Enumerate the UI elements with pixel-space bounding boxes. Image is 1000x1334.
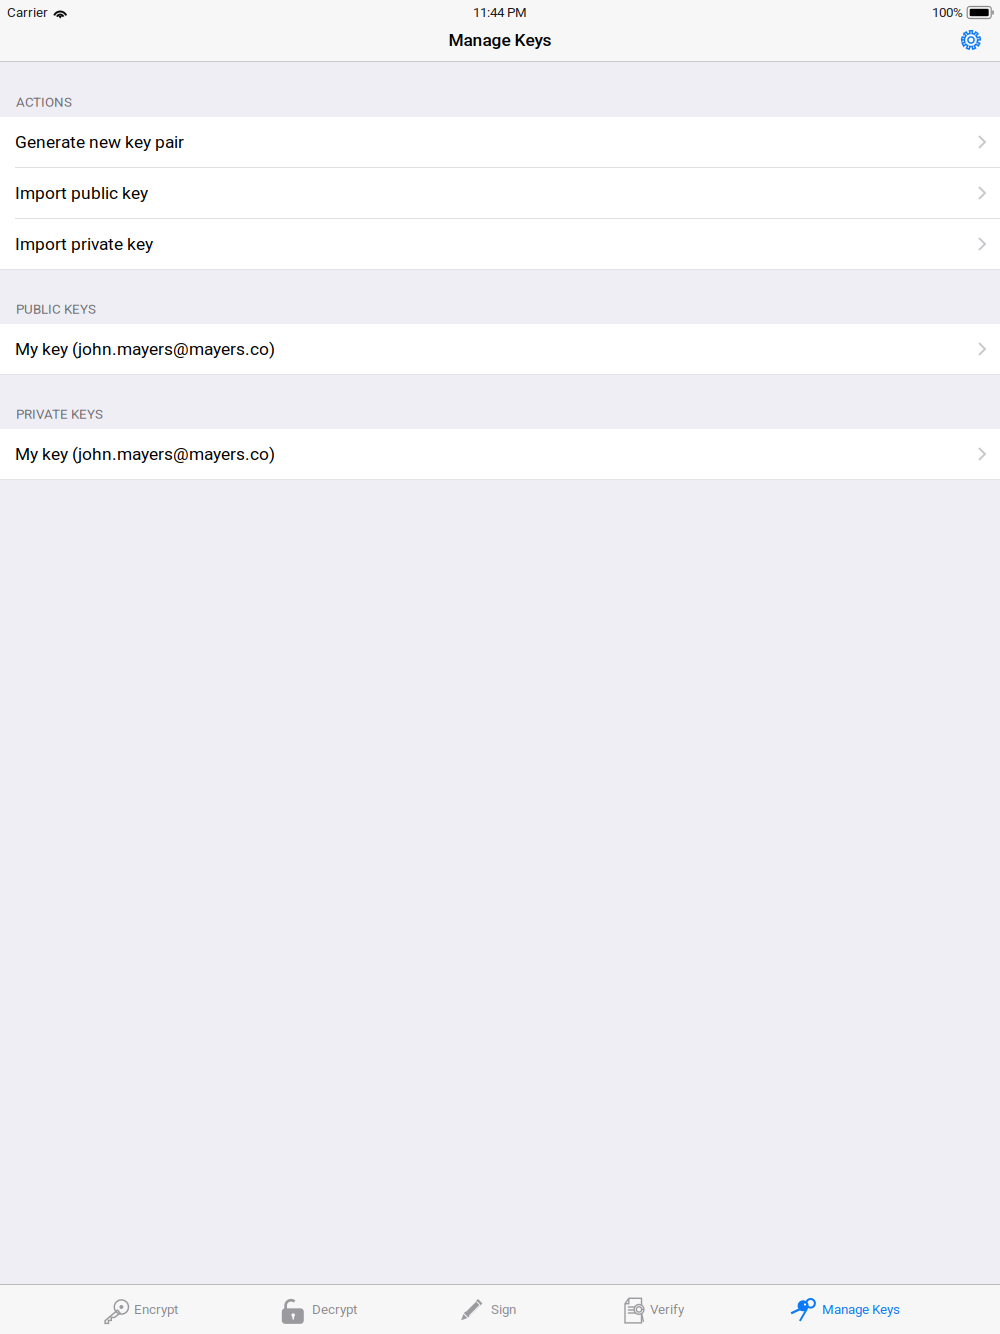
staticText: Verify (650, 1302, 684, 1317)
button[interactable]: Verify (612, 1285, 688, 1334)
button[interactable]: Generate new key pair (0, 117, 1000, 167)
staticText: Encrypt (134, 1302, 178, 1317)
button[interactable]: Sign (453, 1285, 520, 1334)
staticText: Manage Keys (822, 1302, 900, 1317)
staticText: Manage Keys (448, 30, 551, 50)
staticText: Import public key (15, 183, 148, 203)
staticText: Decrypt (312, 1302, 357, 1317)
staticText: ACTIONS (16, 94, 72, 110)
button[interactable]: Manage Keys (780, 1285, 904, 1334)
button[interactable]: My key (john.mayers@mayers.co) (0, 324, 1000, 374)
staticText: PUBLIC KEYS (16, 301, 96, 317)
button[interactable]: Import private key (0, 219, 1000, 269)
staticText: Generate new key pair (15, 132, 184, 152)
staticText: 100% (932, 5, 963, 20)
staticText: 11:44 PM (473, 5, 527, 20)
staticText: My key (john.mayers@mayers.co) (15, 444, 275, 464)
staticText: Carrier (7, 5, 48, 20)
staticText: My key (john.mayers@mayers.co) (15, 339, 275, 359)
button[interactable]: Settings (953, 24, 989, 56)
button[interactable]: Decrypt (274, 1285, 361, 1334)
button[interactable]: Import public key (0, 168, 1000, 218)
staticText: PRIVATE KEYS (16, 406, 103, 422)
button[interactable]: Encrypt (96, 1285, 182, 1334)
staticText: Import private key (15, 234, 153, 254)
button[interactable]: My key (john.mayers@mayers.co) (0, 429, 1000, 479)
staticText: Sign (491, 1302, 516, 1317)
